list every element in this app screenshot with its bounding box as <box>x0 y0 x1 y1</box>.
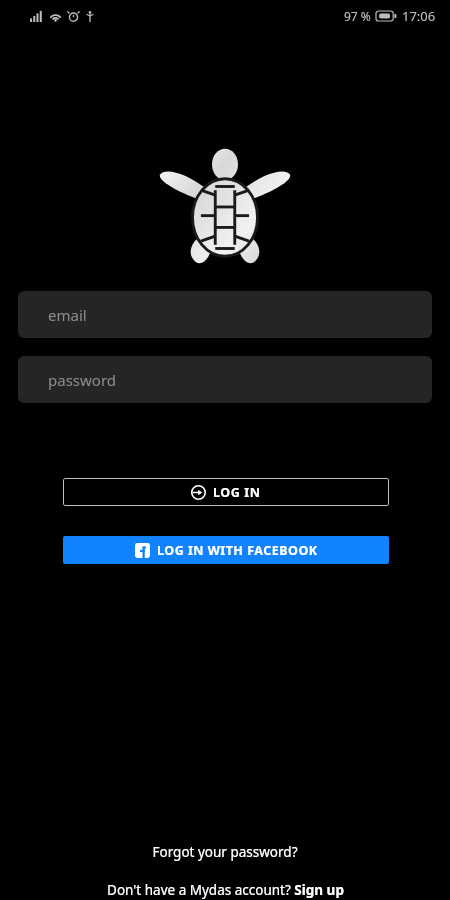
other: Mydas turtle logo <box>160 145 290 270</box>
button[interactable]: email <box>18 291 432 338</box>
button[interactable]: Don't have a Mydas account? Sign up <box>97 878 354 900</box>
staticText: password <box>48 370 116 390</box>
staticText: Forgot your password? <box>152 843 298 861</box>
button[interactable]: Forgot your password? <box>142 840 308 864</box>
button[interactable]: Log in <box>63 478 389 506</box>
button[interactable]: Facebook <box>63 536 389 564</box>
staticText: 17:06 <box>402 7 436 25</box>
other: Facebook <box>135 543 150 558</box>
staticText: Don't have a Mydas account? Sign up <box>107 881 344 899</box>
staticText: LOG IN WITH FACEBOOK <box>157 542 318 559</box>
other: Log in <box>191 485 206 500</box>
staticText: LOG IN <box>213 484 261 501</box>
staticText: 97 % <box>344 8 371 24</box>
staticText: email <box>48 305 87 325</box>
button[interactable]: password <box>18 356 432 403</box>
